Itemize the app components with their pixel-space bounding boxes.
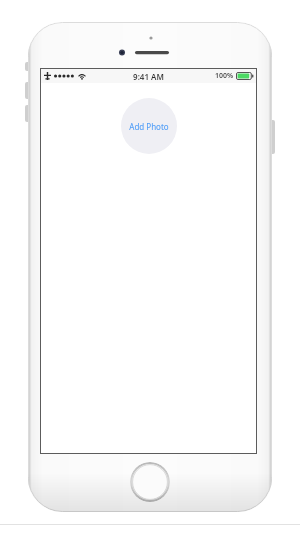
button[interactable]: Add Photo (121, 98, 177, 154)
staticText: Add Photo (129, 121, 169, 132)
staticText: 9:41 AM (133, 71, 164, 82)
button[interactable]: Home (130, 462, 170, 502)
staticText: 100% (215, 71, 234, 81)
